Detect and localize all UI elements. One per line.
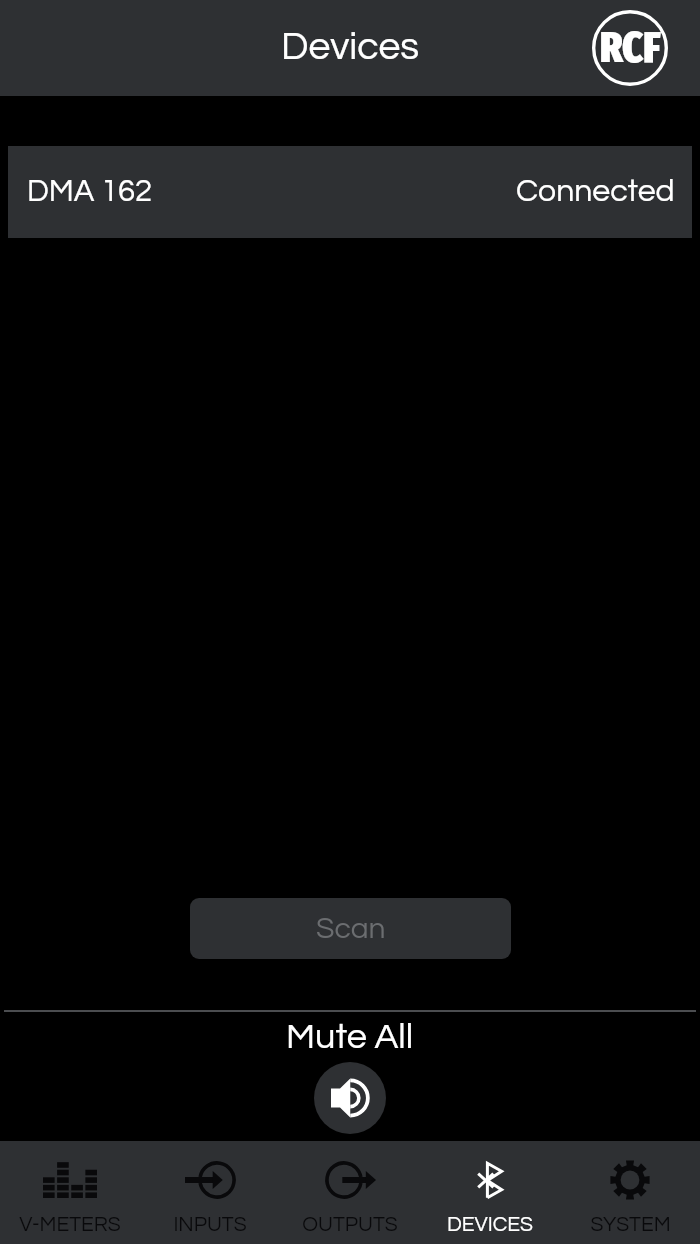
button[interactable]: V-METERS: [0, 1141, 140, 1244]
staticText: V-METERS: [19, 1214, 121, 1236]
staticText: DMA 162: [27, 176, 153, 208]
staticText: Devices: [281, 27, 419, 67]
staticText: INPUTS: [173, 1214, 247, 1236]
staticText: OUTPUTS: [302, 1214, 398, 1236]
button[interactable]: INPUTS: [140, 1141, 280, 1244]
staticText: Mute All: [286, 1018, 414, 1055]
staticText: Scan: [316, 913, 386, 944]
button[interactable]: Mute All: [314, 1062, 386, 1134]
button[interactable]: SYSTEM: [560, 1141, 700, 1244]
button[interactable]: DEVICES: [420, 1141, 560, 1244]
button[interactable]: OUTPUTS: [280, 1141, 420, 1244]
button[interactable]: DMA 162: [8, 146, 692, 238]
staticText: DEVICES: [447, 1214, 533, 1236]
staticText: RCF: [600, 22, 661, 74]
button[interactable]: Scan: [190, 898, 511, 959]
staticText: SYSTEM: [590, 1214, 671, 1236]
staticText: Connected: [516, 175, 675, 208]
button[interactable]: RCF logo: [592, 10, 668, 86]
